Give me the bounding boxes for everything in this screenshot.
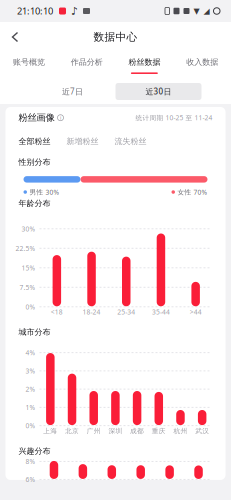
staticText: 18-24 bbox=[83, 307, 101, 316]
button[interactable]: 全部粉丝 bbox=[18, 136, 50, 146]
staticText: 6% bbox=[25, 475, 35, 484]
button[interactable]: 近7日 bbox=[29, 83, 115, 100]
staticText: 重庆 bbox=[152, 427, 166, 435]
staticText: >44 bbox=[190, 307, 202, 316]
staticText: 1% bbox=[25, 403, 35, 412]
staticText: 数据中心 bbox=[93, 30, 137, 43]
staticText: 账号概览 bbox=[13, 57, 45, 67]
staticText: 近7日 bbox=[62, 86, 83, 97]
staticText: 4% bbox=[25, 348, 35, 357]
button[interactable]: Back bbox=[0, 22, 30, 52]
staticText: ♪ bbox=[71, 5, 78, 17]
staticText: 2% bbox=[25, 385, 35, 394]
staticText: 上海 bbox=[43, 427, 57, 435]
staticText: 粉丝画像 bbox=[18, 112, 54, 123]
staticText: 城市分布 bbox=[18, 327, 50, 337]
staticText: 8% bbox=[25, 457, 35, 466]
staticText: 年龄分布 bbox=[18, 198, 50, 208]
staticText: 女性 70% bbox=[177, 188, 207, 196]
staticText: 21:10:10 bbox=[17, 5, 53, 17]
staticText: 0% bbox=[25, 302, 35, 311]
staticText: 粉丝数据 bbox=[128, 57, 160, 67]
staticText: 新增粉丝 bbox=[66, 136, 98, 146]
staticText: 15% bbox=[21, 263, 35, 272]
staticText: 0% bbox=[25, 421, 35, 430]
staticText: 成都 bbox=[130, 427, 144, 435]
button[interactable]: 账号概览 bbox=[0, 52, 58, 78]
button[interactable]: 近30日 bbox=[115, 83, 201, 100]
staticText: 北京 bbox=[65, 427, 79, 435]
staticText: 作品分析 bbox=[71, 57, 103, 67]
button[interactable]: 作品分析 bbox=[58, 52, 116, 78]
staticText: 深圳 bbox=[108, 427, 122, 435]
staticText: 22.5% bbox=[15, 244, 35, 253]
button[interactable]: 流失粉丝 bbox=[98, 136, 146, 146]
staticText: 近30日 bbox=[145, 86, 171, 97]
staticText: 全部粉丝 bbox=[18, 136, 50, 146]
staticText: ◢ bbox=[203, 6, 209, 16]
staticText: 流失粉丝 bbox=[114, 136, 146, 146]
staticText: 兴趣分布 bbox=[18, 446, 50, 456]
staticText: 7.5% bbox=[19, 283, 35, 292]
staticText: 收入数据 bbox=[186, 57, 218, 67]
staticText: <18 bbox=[51, 307, 63, 316]
staticText: 35-44 bbox=[152, 307, 170, 316]
button[interactable]: 新增粉丝 bbox=[50, 136, 98, 146]
staticText: 25-34 bbox=[117, 307, 135, 316]
staticText: 杭州 bbox=[173, 427, 187, 435]
staticText: i bbox=[60, 114, 61, 121]
staticText: 30% bbox=[21, 224, 35, 233]
staticText: 3% bbox=[25, 366, 35, 375]
staticText: 广州 bbox=[87, 427, 101, 435]
staticText: 统计周期 10-25 至 11-24 bbox=[135, 113, 212, 122]
button[interactable]: 收入数据 bbox=[173, 52, 231, 78]
staticText: 性别分布 bbox=[18, 157, 50, 167]
staticText: ▼ bbox=[193, 6, 199, 16]
staticText: 武汉 bbox=[195, 427, 209, 435]
button[interactable]: 粉丝数据 bbox=[115, 52, 173, 78]
staticText: 男性 30% bbox=[29, 188, 59, 196]
